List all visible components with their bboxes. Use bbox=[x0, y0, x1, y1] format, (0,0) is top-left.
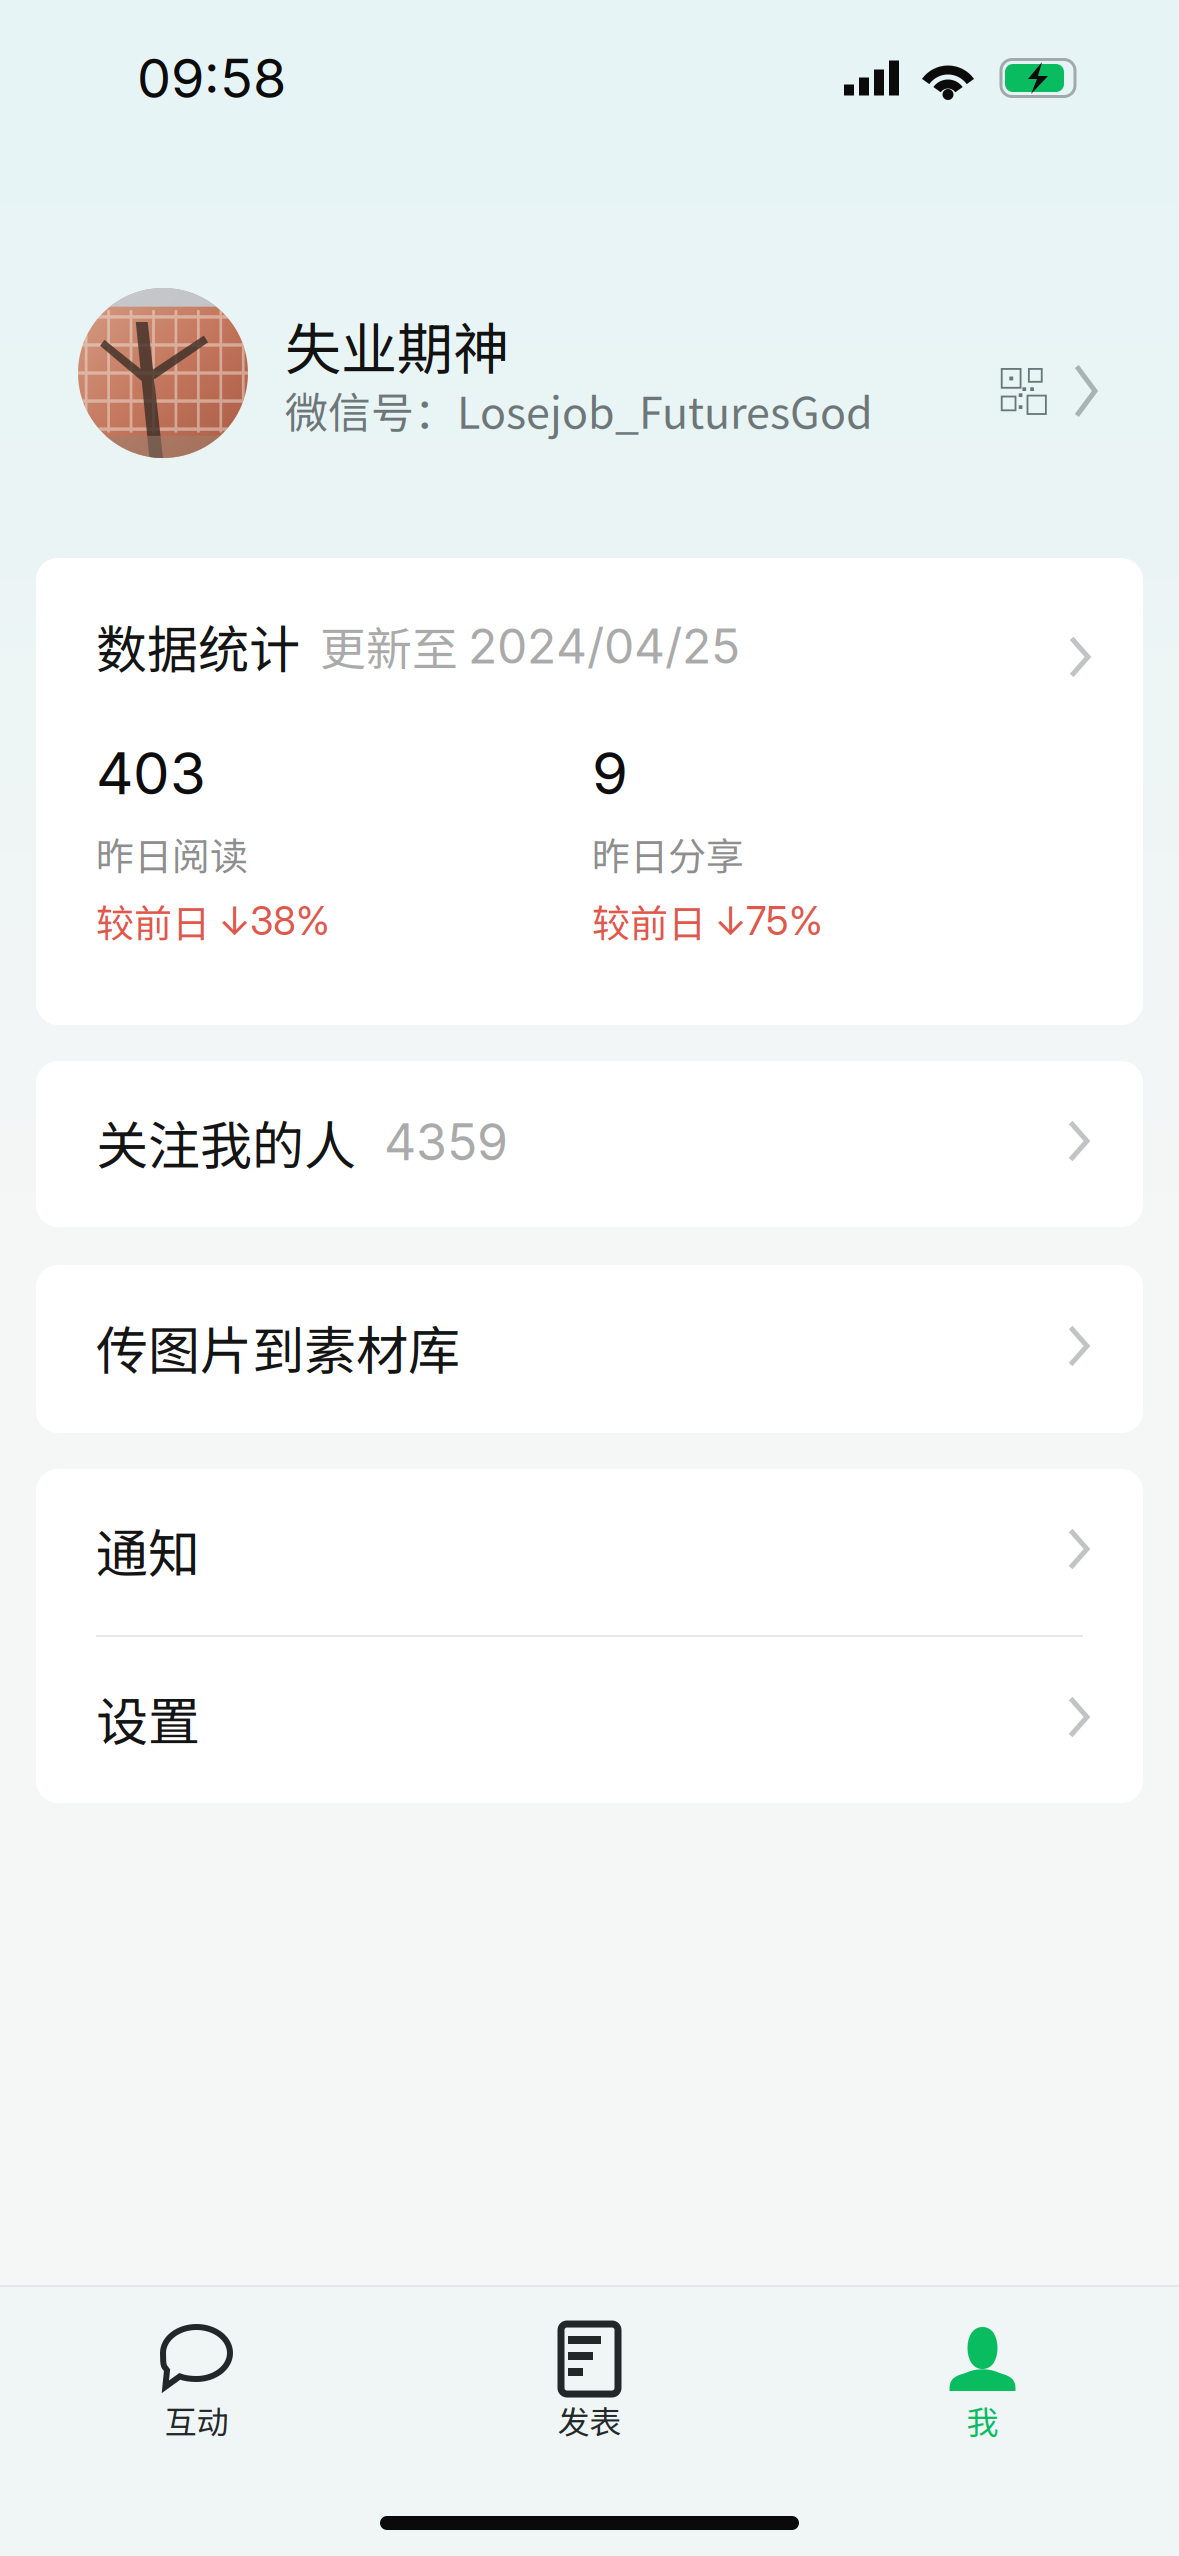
button[interactable]: 通知 bbox=[36, 1469, 1143, 1635]
staticText: 传图片到素材库 bbox=[96, 1309, 460, 1385]
staticText: 昨日分享 bbox=[592, 826, 744, 881]
button[interactable]: 失业期神 bbox=[0, 288, 1179, 458]
staticText: ↓75% bbox=[715, 897, 823, 944]
staticText: 09:58 bbox=[137, 45, 286, 111]
staticText: 通知 bbox=[96, 1512, 200, 1588]
button[interactable]: 传图片到素材库 bbox=[36, 1265, 1143, 1433]
staticText: 微信号：Losejob_FuturesGod bbox=[285, 379, 873, 441]
staticText: 昨日阅读 bbox=[96, 826, 248, 881]
button[interactable]: 设置 bbox=[36, 1637, 1143, 1803]
staticText: 2024/04/25 bbox=[468, 617, 740, 675]
staticText: 更新至 bbox=[300, 613, 468, 679]
staticText: 失业期神 bbox=[285, 305, 509, 386]
button[interactable]: 数据统计 bbox=[36, 558, 1143, 1025]
staticText: 4359 bbox=[356, 1112, 508, 1172]
staticText: ↓38% bbox=[219, 897, 330, 944]
staticText: 互动 bbox=[164, 2397, 228, 2443]
button[interactable]: 关注我的人 bbox=[36, 1061, 1143, 1227]
staticText: 设置 bbox=[96, 1680, 200, 1756]
button[interactable]: 发表 bbox=[393, 2323, 786, 2441]
staticText: 较前日 bbox=[96, 893, 219, 948]
button[interactable]: 互动 bbox=[0, 2323, 393, 2441]
staticText: 关注我的人 bbox=[96, 1104, 356, 1180]
staticText: 9 bbox=[592, 738, 628, 808]
staticText: 我 bbox=[966, 2397, 998, 2443]
staticText: 较前日 bbox=[592, 893, 715, 948]
staticText: 403 bbox=[96, 738, 206, 808]
button[interactable]: 我 bbox=[786, 2323, 1179, 2441]
staticText: 数据统计 bbox=[96, 609, 300, 683]
staticText: 发表 bbox=[557, 2397, 621, 2443]
